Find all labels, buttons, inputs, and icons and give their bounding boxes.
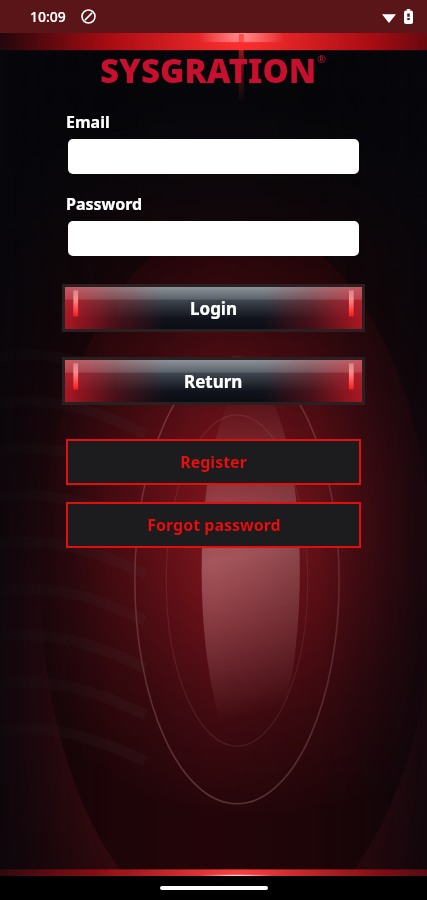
- staticText: Password: [66, 193, 143, 215]
- button[interactable]: Login: [62, 284, 365, 332]
- button[interactable]: Return: [62, 357, 365, 405]
- button[interactable]: [68, 221, 359, 256]
- staticText: Return: [184, 370, 243, 393]
- staticText: Login: [190, 297, 238, 320]
- button[interactable]: Register: [66, 439, 361, 485]
- staticText: ®: [317, 51, 327, 66]
- staticText: Forgot password: [147, 514, 281, 536]
- staticText: SYSGRATION: [100, 48, 317, 93]
- staticText: Register: [180, 451, 247, 473]
- button[interactable]: [68, 139, 359, 174]
- button[interactable]: Forgot password: [66, 502, 361, 548]
- staticText: Email: [66, 111, 110, 133]
- staticText: 10:09: [30, 7, 66, 26]
